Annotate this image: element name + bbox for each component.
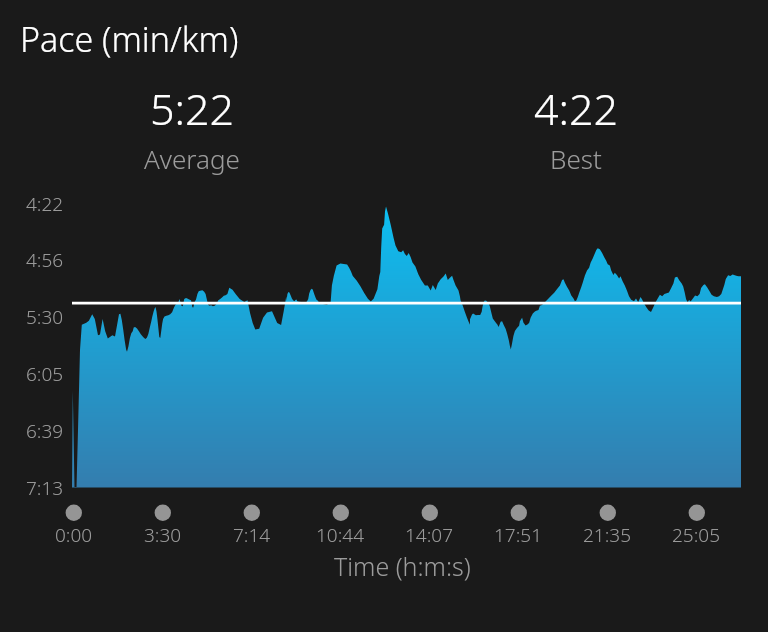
staticText: Pace (min/km) <box>20 16 239 62</box>
staticText: 17:51 <box>494 522 543 548</box>
staticText: 14:07 <box>405 522 454 548</box>
staticText: 21:35 <box>583 522 632 548</box>
staticText: 5:30 <box>26 304 64 330</box>
button[interactable]: Pace (min/km) <box>20 16 239 62</box>
button[interactable]: 5:22 <box>84 75 300 182</box>
staticText: 0:00 <box>55 522 93 548</box>
staticText: 4:22 <box>26 191 64 217</box>
staticText: 4:56 <box>26 247 64 273</box>
staticText: 7:14 <box>233 522 271 548</box>
staticText: 25:05 <box>672 522 721 548</box>
staticText: 6:05 <box>26 361 64 387</box>
button[interactable]: Pace chart over time <box>72 196 741 496</box>
staticText: Best <box>550 141 602 176</box>
staticText: 6:39 <box>26 418 64 444</box>
staticText: 3:30 <box>144 522 182 548</box>
staticText: Time (h:m:s) <box>334 549 471 583</box>
staticText: 5:22 <box>150 79 235 138</box>
button[interactable]: 4:22 <box>468 75 684 182</box>
staticText: Average <box>144 141 240 176</box>
staticText: 10:44 <box>316 522 365 548</box>
staticText: 7:13 <box>26 475 64 501</box>
staticText: 4:22 <box>534 79 619 138</box>
